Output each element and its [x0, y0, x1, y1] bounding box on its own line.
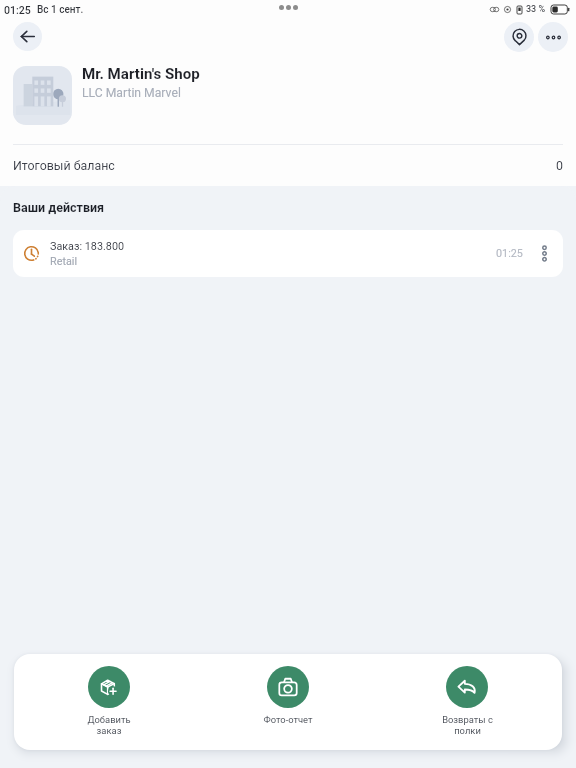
- button[interactable]: Location: [504, 22, 534, 52]
- staticText: 01:25: [496, 247, 523, 260]
- button[interactable]: More options: [538, 22, 568, 52]
- staticText: Добавить заказ: [87, 714, 131, 736]
- staticText: Mr. Martin's Shop: [82, 65, 200, 83]
- staticText: Retail: [50, 255, 78, 268]
- staticText: 0: [556, 158, 563, 173]
- staticText: 33 %: [526, 4, 546, 15]
- staticText: Итоговый баланс: [13, 158, 115, 173]
- button[interactable]: Заказ: 183.800: [13, 230, 563, 277]
- button[interactable]: Back: [13, 22, 42, 51]
- staticText: Заказ: 183.800: [50, 240, 125, 253]
- staticText: Фото-отчет: [263, 714, 313, 725]
- button[interactable]: Добавить заказ: [25, 654, 193, 750]
- staticText: Ваши действия: [13, 200, 105, 215]
- staticText: LLC Martin Marvel: [82, 86, 181, 100]
- staticText: 01:25: [4, 4, 31, 16]
- button[interactable]: Фото-отчет: [204, 654, 372, 750]
- staticText: Вс 1 сент.: [37, 4, 84, 16]
- staticText: Возвраты с полки: [442, 714, 493, 736]
- button[interactable]: Возвраты с полки: [383, 654, 551, 750]
